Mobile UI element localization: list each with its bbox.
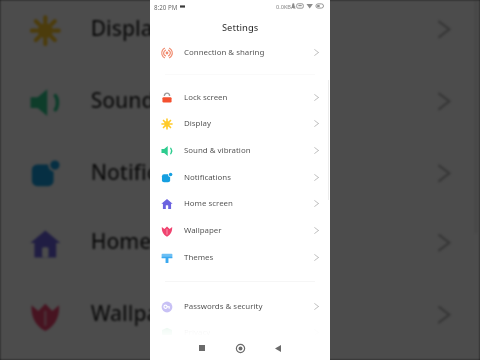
button[interactable]: Home screen xyxy=(150,190,330,217)
staticText: Notifications xyxy=(184,172,231,183)
staticText: Passwords & security xyxy=(184,301,263,312)
button[interactable]: Themes xyxy=(0,351,480,360)
button[interactable]: Wallpaper xyxy=(0,279,480,351)
staticText: 0.0KB/s xyxy=(276,3,296,11)
button[interactable]: Sound & vibration xyxy=(150,137,330,164)
button[interactable]: Privacy xyxy=(150,319,330,346)
staticText: Sound & vibration xyxy=(184,145,251,156)
button[interactable]: Back xyxy=(267,337,289,359)
button[interactable]: Notifications xyxy=(0,137,480,209)
button[interactable]: Lock screen xyxy=(150,84,330,111)
button[interactable]: Display xyxy=(0,0,480,65)
staticText: 8:20 PM xyxy=(154,3,178,11)
staticText: Sound & vibration xyxy=(91,87,272,116)
staticText: Display xyxy=(91,15,165,44)
button[interactable]: Wallpaper xyxy=(150,217,330,244)
button[interactable]: Home screen xyxy=(0,207,480,279)
button[interactable]: Recents xyxy=(191,337,213,359)
button[interactable]: Themes xyxy=(150,244,330,271)
button[interactable]: Notifications xyxy=(150,164,330,191)
staticText: Lock screen xyxy=(184,92,228,103)
staticText: Settings xyxy=(222,21,259,34)
staticText: Home screen xyxy=(184,198,233,209)
staticText: Display xyxy=(184,118,211,129)
button[interactable]: Connection & sharing xyxy=(150,39,330,66)
button[interactable]: Home xyxy=(229,337,251,359)
staticText: Wallpaper xyxy=(184,225,222,236)
button[interactable]: Display xyxy=(150,110,330,137)
staticText: Home screen xyxy=(91,228,224,257)
button[interactable]: Passwords & security xyxy=(150,293,330,320)
staticText: Notifications xyxy=(91,159,221,188)
staticText: Wallpaper xyxy=(91,300,195,329)
staticText: Connection & sharing xyxy=(184,47,265,58)
staticText: Themes xyxy=(184,252,214,263)
button[interactable]: Sound & vibration xyxy=(0,65,480,137)
